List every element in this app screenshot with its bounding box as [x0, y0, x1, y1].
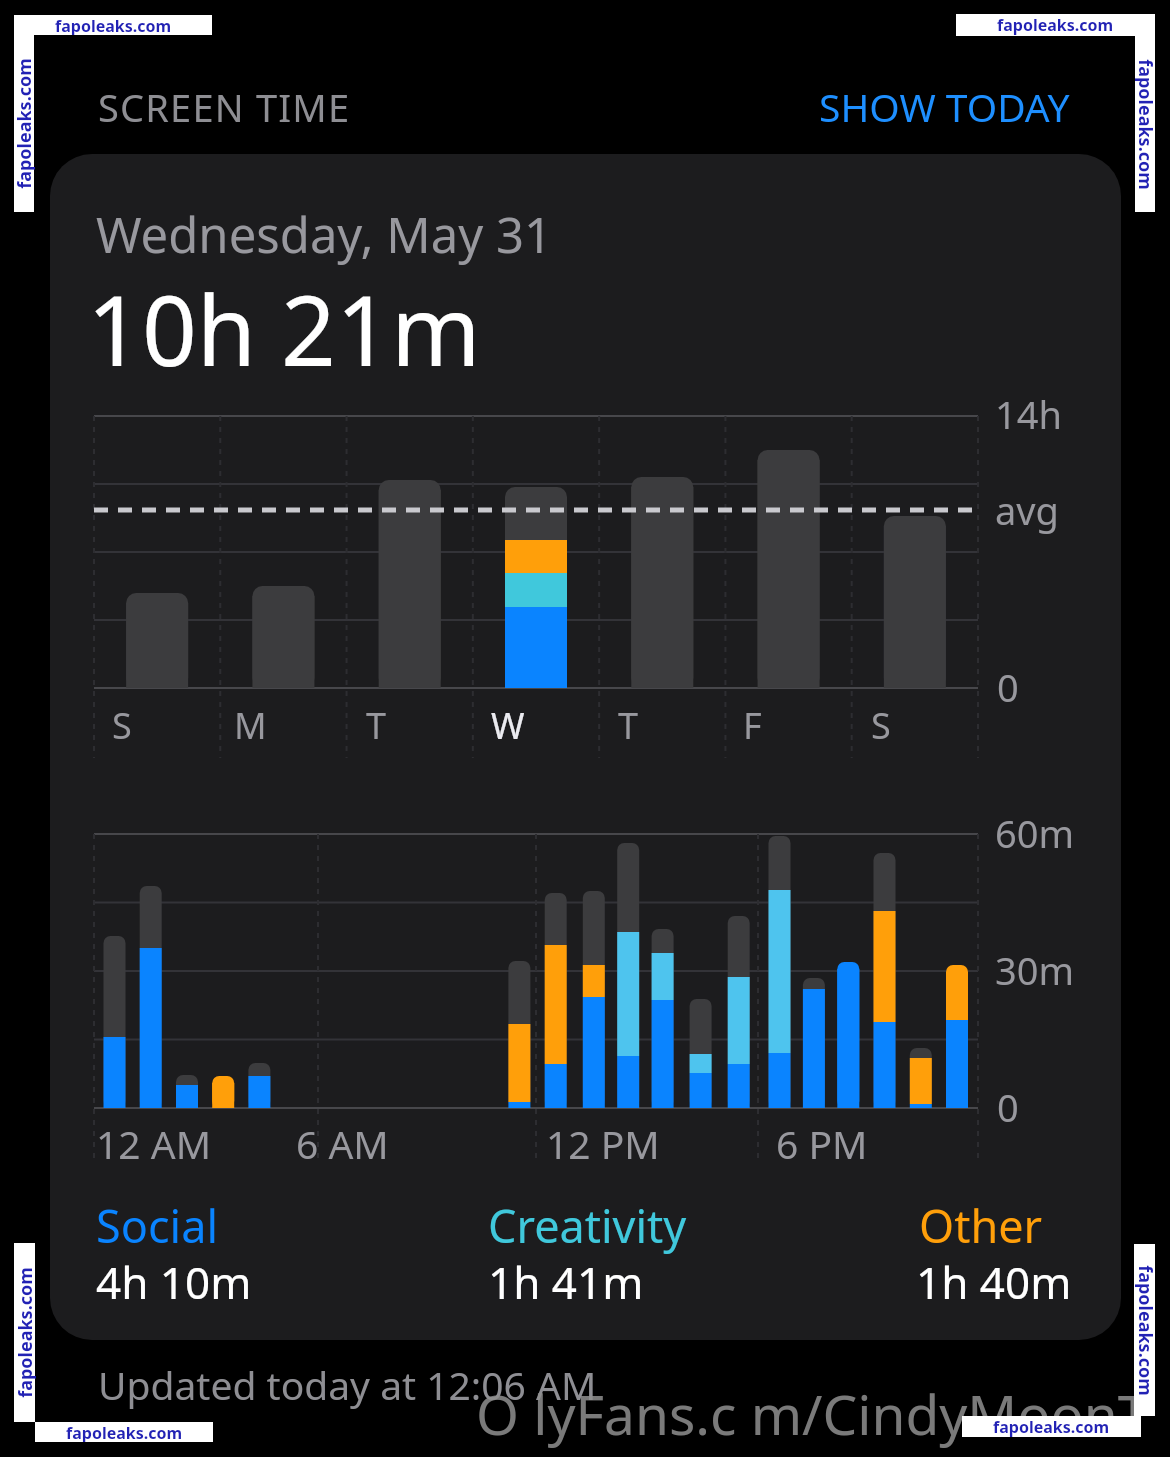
staticText: W	[491, 701, 525, 750]
staticText: 0	[997, 1081, 1019, 1133]
staticText: fapoleaks.com	[997, 14, 1114, 36]
staticText: Other	[919, 1195, 1043, 1256]
staticText: avg	[995, 484, 1059, 536]
staticText: T	[618, 701, 639, 750]
button[interactable]: SHOW TODAY	[819, 80, 1070, 133]
staticText: SHOW TODAY	[819, 80, 1070, 133]
staticText: Wednesday, May 31	[96, 201, 552, 268]
staticText: fapoleaks.com	[55, 15, 172, 35]
staticText: fapoleaks.com	[1132, 1245, 1157, 1415]
staticText: fapoleaks.com	[1132, 39, 1157, 209]
staticText: Social	[96, 1195, 218, 1256]
staticText: T	[366, 701, 387, 750]
staticText: 60m	[995, 807, 1075, 859]
staticText: S	[112, 701, 132, 750]
staticText: fapoleaks.com	[993, 1416, 1110, 1437]
staticText: 30m	[995, 944, 1075, 996]
staticText: M	[234, 701, 267, 750]
staticText: Updated today at 12:06 AM	[98, 1358, 597, 1411]
staticText: 4h 10m	[96, 1252, 252, 1312]
staticText: 12 PM	[546, 1117, 660, 1170]
staticText: O lyFans.c m/CindyMoonT	[476, 1376, 1149, 1451]
staticText: 14h	[995, 388, 1062, 440]
staticText: S	[871, 701, 891, 750]
staticText: fapoleaks.com	[12, 1247, 37, 1417]
staticText: 12 AM	[96, 1117, 212, 1170]
staticText: fapoleaks.com	[11, 38, 36, 208]
staticText: Creativity	[488, 1195, 687, 1256]
staticText: 1h 40m	[916, 1252, 1072, 1312]
staticText: 0	[997, 661, 1019, 713]
staticText: fapoleaks.com	[66, 1422, 183, 1442]
staticText: F	[743, 701, 762, 750]
staticText: 1h 41m	[488, 1252, 644, 1312]
staticText: 6 AM	[296, 1117, 389, 1170]
staticText: 6 PM	[776, 1117, 868, 1170]
staticText: SCREEN TIME	[98, 81, 351, 133]
staticText: 10h 21m	[87, 263, 481, 394]
